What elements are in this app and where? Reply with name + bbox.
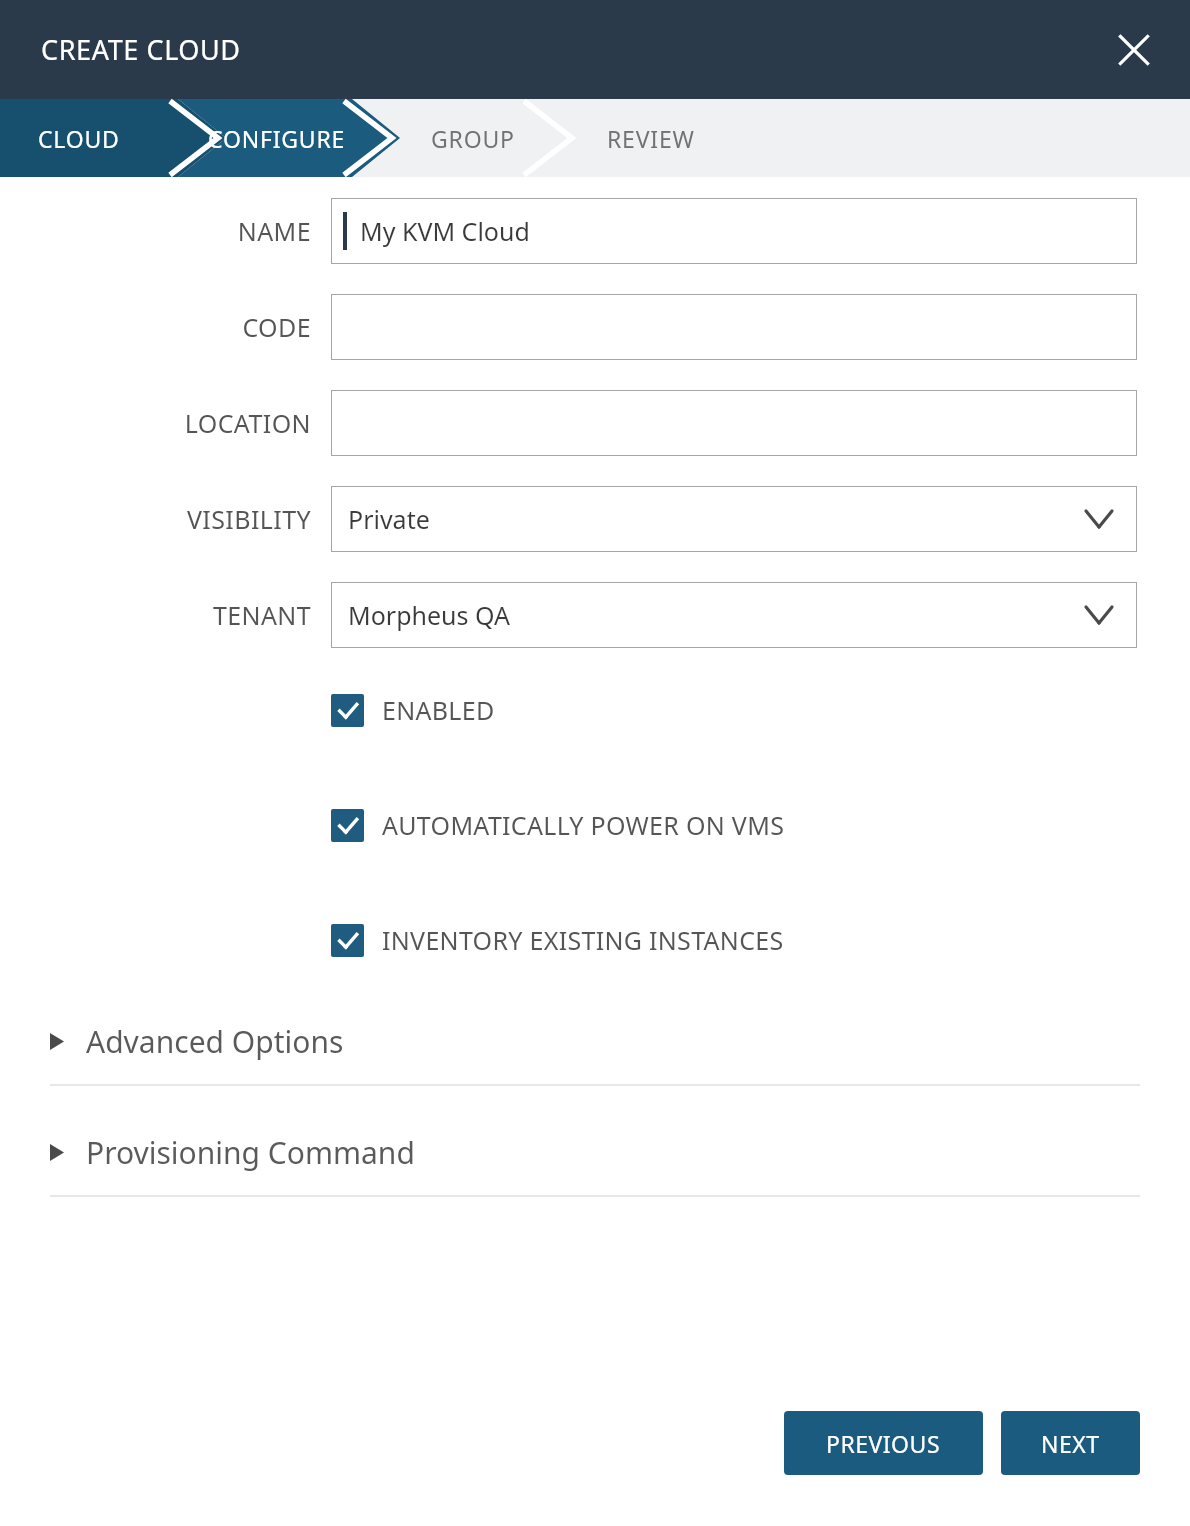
button[interactable]: GROUP bbox=[431, 123, 515, 154]
staticText: TENANT bbox=[212, 598, 311, 632]
button[interactable]: CLOUD bbox=[38, 123, 120, 154]
button[interactable]: ENABLED bbox=[331, 693, 495, 727]
staticText: CODE bbox=[242, 310, 311, 344]
staticText: VISIBILITY bbox=[186, 502, 311, 536]
staticText: Advanced Options bbox=[86, 1021, 344, 1062]
staticText: CREATE CLOUD bbox=[41, 31, 241, 68]
staticText: ENABLED bbox=[382, 693, 495, 727]
button[interactable]: CONFIGURE bbox=[208, 123, 346, 154]
staticText: Private bbox=[348, 502, 430, 536]
staticText: PREVIOUS bbox=[826, 1428, 941, 1459]
button[interactable] bbox=[331, 390, 1137, 456]
staticText: Provisioning Command bbox=[86, 1132, 415, 1173]
button[interactable]: Provisioning Command bbox=[50, 1132, 1140, 1197]
staticText: NEXT bbox=[1041, 1428, 1100, 1459]
button[interactable] bbox=[331, 294, 1137, 360]
button[interactable]: AUTOMATICALLY POWER ON VMS bbox=[331, 808, 785, 842]
staticText: INVENTORY EXISTING INSTANCES bbox=[382, 923, 784, 957]
button[interactable]: Advanced Options bbox=[50, 1021, 1140, 1086]
button[interactable]: INVENTORY EXISTING INSTANCES bbox=[331, 923, 784, 957]
staticText: NAME bbox=[237, 214, 311, 248]
button[interactable]: NEXT bbox=[1001, 1411, 1140, 1475]
button[interactable]: PREVIOUS bbox=[784, 1411, 983, 1475]
staticText: AUTOMATICALLY POWER ON VMS bbox=[382, 808, 785, 842]
button[interactable]: REVIEW bbox=[607, 123, 695, 154]
button[interactable]: My KVM Cloud bbox=[331, 198, 1137, 264]
staticText: Morpheus QA bbox=[348, 598, 510, 632]
button[interactable]: Private bbox=[331, 486, 1137, 552]
staticText: LOCATION bbox=[184, 406, 311, 440]
button[interactable]: Morpheus QA bbox=[331, 582, 1137, 648]
button[interactable]: Close bbox=[1106, 22, 1162, 78]
staticText: My KVM Cloud bbox=[360, 214, 530, 248]
